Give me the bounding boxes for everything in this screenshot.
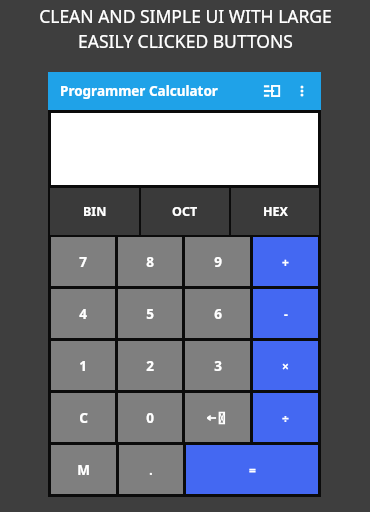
- staticText: CLEAN AND SIMPLE UI WITH LARGE: [39, 4, 332, 28]
- button[interactable]: Backspace: [185, 393, 250, 442]
- staticText: OCT: [172, 203, 198, 220]
- button[interactable]: 6: [185, 289, 250, 338]
- staticText: 4: [79, 305, 87, 323]
- button[interactable]: Number base settings: [259, 78, 285, 104]
- staticText: 2: [146, 357, 154, 375]
- staticText: 6: [214, 305, 222, 323]
- staticText: +: [282, 254, 289, 270]
- staticText: 7: [79, 253, 87, 271]
- staticText: 1: [79, 357, 87, 375]
- staticText: 9: [214, 253, 222, 271]
- staticText: Programmer Calculator: [60, 82, 218, 100]
- staticText: 3: [214, 357, 222, 375]
- staticText: C: [79, 409, 88, 427]
- button[interactable]: 8: [118, 237, 182, 286]
- button[interactable]: 5: [118, 289, 182, 338]
- button[interactable]: ×: [253, 341, 318, 390]
- button[interactable]: BIN: [50, 188, 139, 235]
- staticText: 0: [146, 409, 154, 427]
- staticText: -: [284, 306, 288, 322]
- button[interactable]: 9: [185, 237, 250, 286]
- staticText: M: [77, 461, 90, 479]
- button[interactable]: -: [253, 289, 318, 338]
- staticText: .: [149, 462, 153, 478]
- button[interactable]: HEX: [231, 188, 319, 235]
- staticText: =: [249, 462, 256, 478]
- button[interactable]: 3: [185, 341, 250, 390]
- staticText: 8: [146, 253, 154, 271]
- button[interactable]: OCT: [141, 188, 229, 235]
- staticText: 5: [146, 305, 154, 323]
- button[interactable]: M: [51, 445, 116, 494]
- button[interactable]: 0: [118, 393, 182, 442]
- button[interactable]: 1: [51, 341, 115, 390]
- button[interactable]: C: [51, 393, 115, 442]
- button[interactable]: 2: [118, 341, 182, 390]
- staticText: EASILY CLICKED BUTTONS: [78, 29, 293, 53]
- button[interactable]: +: [253, 237, 318, 286]
- button[interactable]: .: [119, 445, 183, 494]
- staticText: ÷: [282, 410, 289, 426]
- staticText: ×: [282, 358, 289, 374]
- staticText: BIN: [83, 203, 107, 220]
- button[interactable]: =: [186, 445, 318, 494]
- button[interactable]: 4: [51, 289, 115, 338]
- staticText: HEX: [263, 203, 288, 220]
- button[interactable]: 7: [51, 237, 115, 286]
- button[interactable]: ÷: [253, 393, 318, 442]
- button[interactable]: More options: [291, 80, 313, 102]
